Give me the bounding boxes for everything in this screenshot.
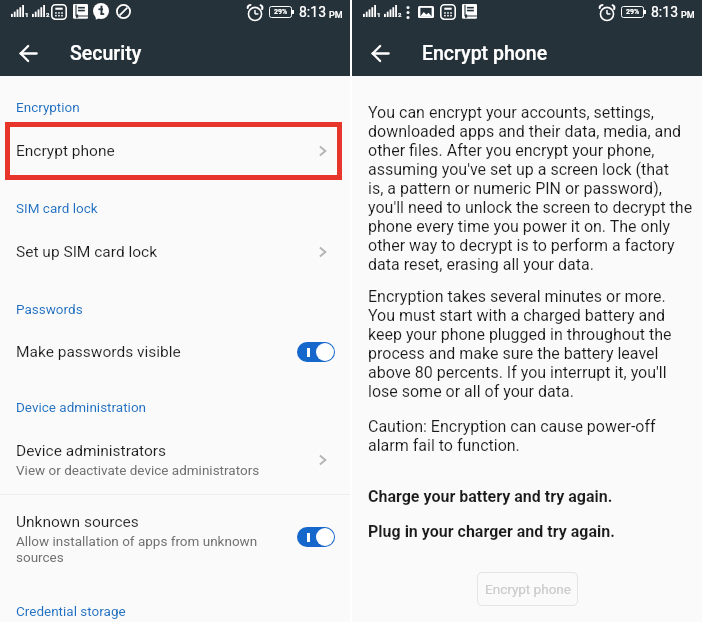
staticText: Device administrators (16, 442, 167, 460)
staticText: Device administration (16, 399, 147, 415)
button[interactable]: Toggle on (297, 527, 335, 547)
staticText: PM (681, 10, 695, 21)
staticText: Set up SIM card lock (16, 243, 158, 261)
staticText: Encrypt phone (16, 142, 115, 160)
staticText: You can encrypt your accounts, settings,… (368, 103, 693, 274)
staticText: PM (329, 10, 343, 21)
staticText: Passwords (16, 301, 83, 317)
staticText: Unknown sources (16, 513, 139, 531)
staticText: 8:13 (651, 4, 678, 20)
staticText: 1 (25, 11, 29, 18)
staticText: SIM card lock (16, 200, 98, 216)
staticText: 2 (46, 11, 50, 18)
staticText: Charge your battery and try again. (368, 487, 613, 506)
staticText: 29% (626, 8, 640, 16)
button[interactable]: Encrypt phone (0, 128, 350, 174)
staticText: Credential storage (16, 603, 126, 619)
button[interactable]: Encrypt phone (477, 572, 578, 606)
button[interactable]: Make passwords visible (0, 329, 350, 375)
staticText: Plug in your charger and try again. (368, 522, 615, 541)
staticText: Encryption takes several minutes or more… (368, 287, 672, 401)
staticText: Security (70, 42, 142, 65)
staticText: Encryption (16, 99, 80, 115)
button[interactable]: Set up SIM card lock (0, 229, 350, 275)
button[interactable]: Device administrators (0, 435, 350, 485)
staticText: 8:13 (299, 4, 326, 20)
button[interactable]: Unknown sources (0, 506, 350, 572)
staticText: Encrypt phone (422, 42, 548, 65)
staticText: Caution: Encryption can cause power-off … (368, 417, 656, 455)
staticText: Make passwords visible (16, 343, 181, 361)
button[interactable]: Navigate back (10, 35, 46, 71)
staticText: 1 (377, 11, 381, 18)
staticText: 29% (274, 8, 288, 16)
button[interactable]: Toggle on (297, 342, 335, 362)
staticText: View or deactivate device administrators (16, 462, 260, 478)
staticText: Allow installation of apps from unknown … (16, 533, 258, 565)
staticText: 2 (398, 11, 402, 18)
button[interactable]: Navigate back (362, 35, 398, 71)
staticText: Encrypt phone (485, 581, 571, 597)
